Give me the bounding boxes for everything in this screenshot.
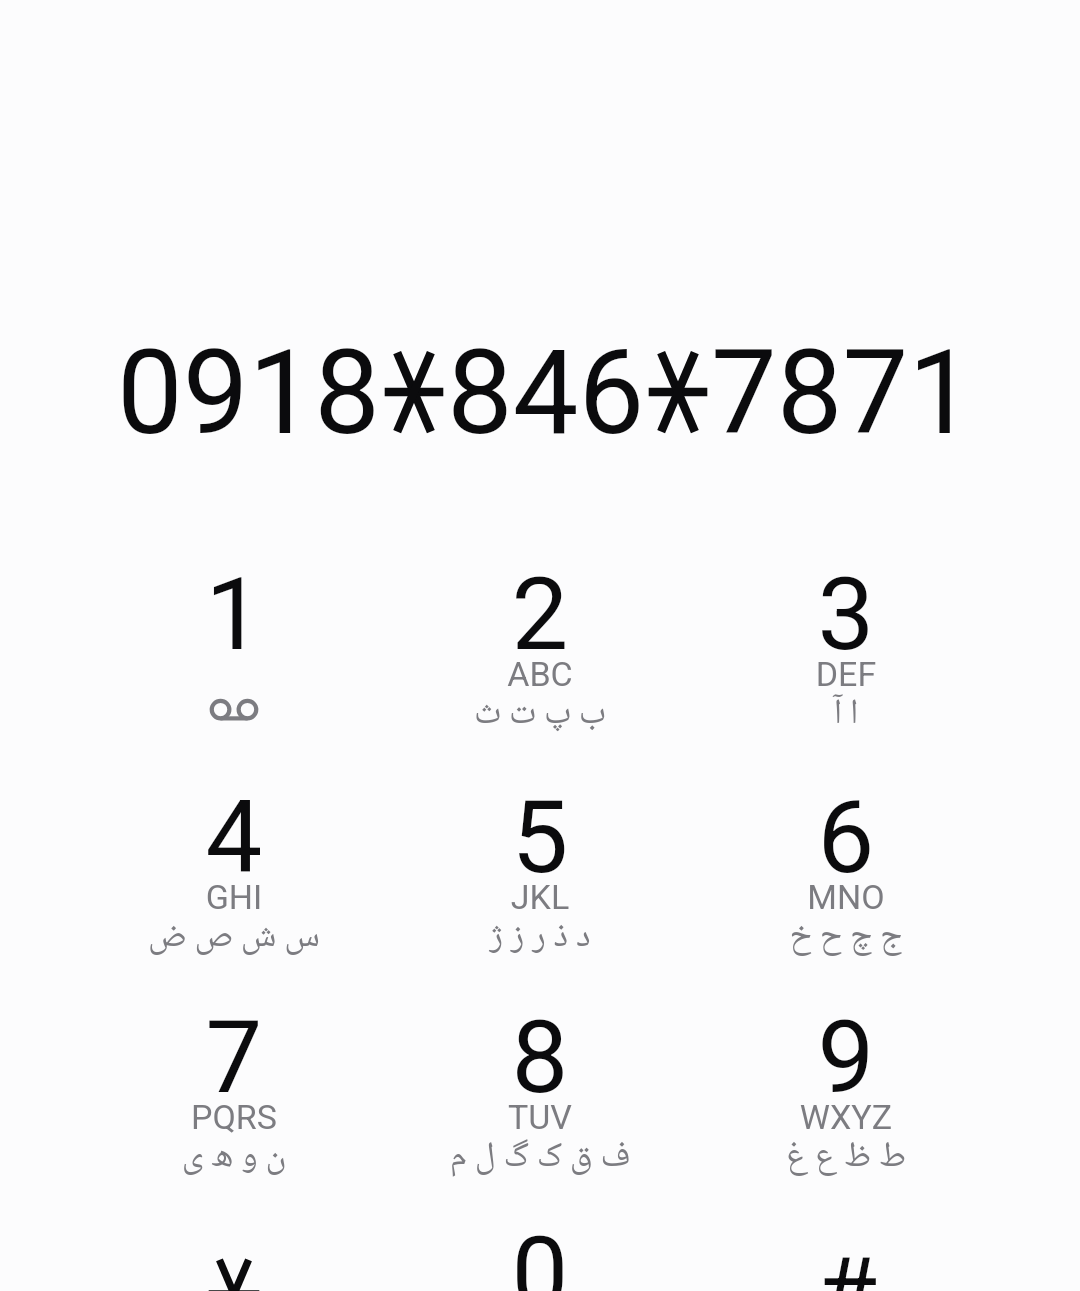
staticText: 2 — [387, 555, 693, 673]
button[interactable]: 8 — [387, 972, 693, 1172]
staticText: MNO — [693, 877, 999, 917]
button[interactable]: 4 — [81, 752, 387, 952]
staticText: 3 — [693, 555, 999, 673]
staticText: 846 — [447, 324, 645, 461]
staticText: ب پ ت ث — [387, 685, 693, 745]
staticText: 8 — [387, 998, 693, 1116]
staticText: JKL — [387, 877, 693, 917]
staticText: ف ق ک گ ل م — [387, 1128, 693, 1188]
staticText: WXYZ — [693, 1097, 999, 1137]
staticText: ا آ — [693, 685, 999, 745]
button[interactable]: 6 — [693, 752, 999, 952]
button[interactable]: pound — [693, 1188, 999, 1291]
staticText: 7 — [81, 998, 387, 1116]
button[interactable]: 1 voicemail — [81, 529, 387, 729]
staticText: 0918 — [117, 324, 381, 461]
button[interactable]: 0 — [387, 1188, 693, 1291]
staticText: 0 — [387, 1214, 693, 1291]
staticText: 4 — [81, 778, 387, 896]
staticText: س ش ص ض — [81, 908, 387, 968]
staticText: # — [693, 1235, 999, 1291]
staticText: TUV — [387, 1097, 693, 1137]
staticText: 5 — [387, 778, 693, 896]
button[interactable]: 9 — [693, 972, 999, 1172]
staticText: PQRS — [81, 1097, 387, 1137]
staticText: ن و ه ی — [81, 1128, 387, 1188]
staticText: ط ظ ع غ — [693, 1128, 999, 1188]
button[interactable]: 7 — [81, 972, 387, 1172]
staticText: ج چ ح خ — [693, 908, 999, 968]
staticText: 1 — [81, 555, 387, 673]
staticText: 9 — [693, 998, 999, 1116]
button[interactable]: 3 — [693, 529, 999, 729]
staticText: 7871 — [711, 324, 975, 461]
staticText: DEF — [693, 654, 999, 694]
button[interactable]: 2 — [387, 529, 693, 729]
staticText: 6 — [693, 778, 999, 896]
button[interactable]: star — [81, 1188, 387, 1291]
staticText: GHI — [81, 877, 387, 917]
staticText: د ذ ر ز ژ — [387, 908, 693, 968]
staticText: ABC — [387, 654, 693, 694]
button[interactable]: 5 — [387, 752, 693, 952]
